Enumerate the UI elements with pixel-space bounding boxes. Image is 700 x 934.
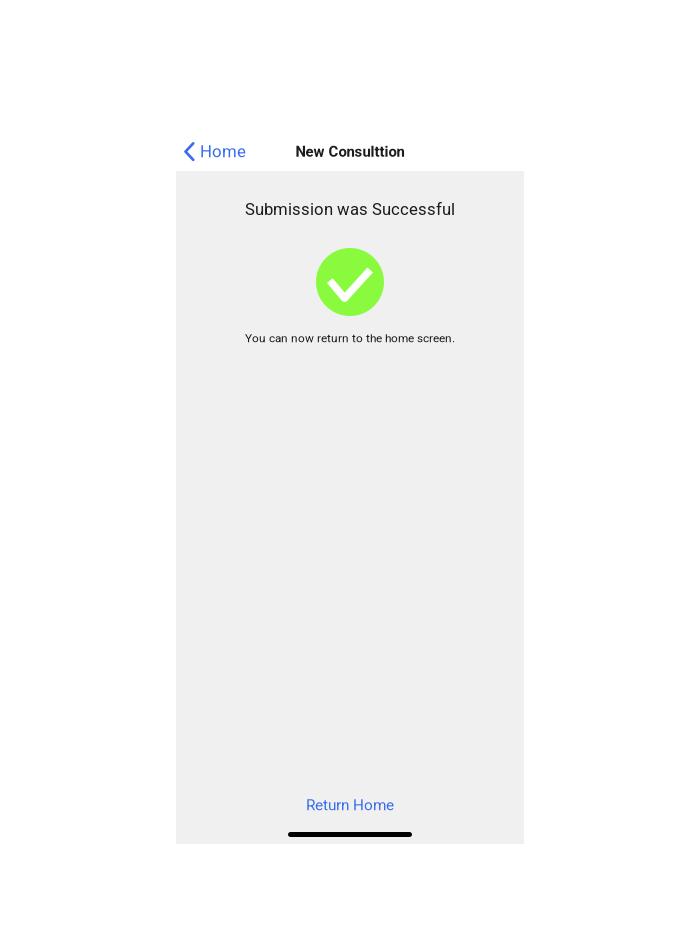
button[interactable]: Return Home [176, 788, 524, 822]
staticText: Submission was Successful [245, 200, 455, 219]
button[interactable]: Home [184, 132, 246, 170]
staticText: Return Home [306, 796, 394, 814]
staticText: You can now return to the home screen. [245, 331, 455, 345]
staticText: New Consulttion [295, 143, 404, 160]
staticText: Home [200, 142, 246, 161]
